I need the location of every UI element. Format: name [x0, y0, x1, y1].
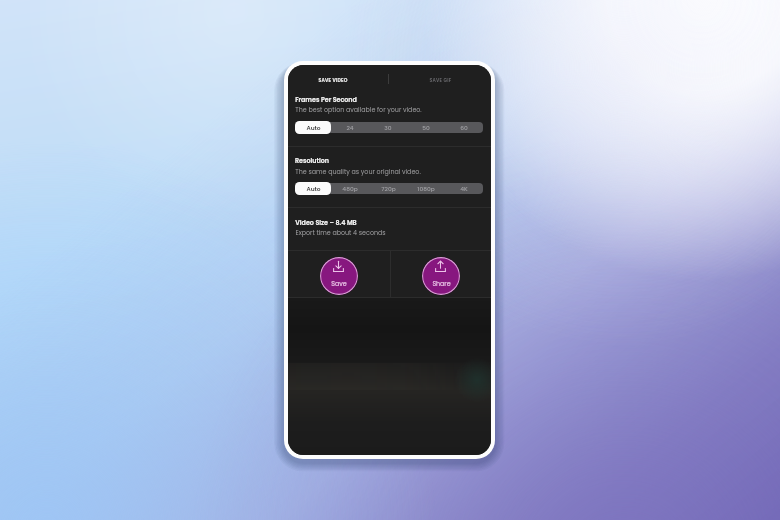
staticText: The same quality as your original video.	[295, 167, 421, 176]
staticText: 4K	[460, 185, 468, 193]
button[interactable]: SAVE VIDEO	[301, 71, 365, 89]
button[interactable]: Auto	[295, 182, 331, 195]
button[interactable]: 50	[407, 121, 445, 134]
staticText: Auto	[306, 185, 321, 193]
button[interactable]: 24	[331, 121, 369, 134]
button[interactable]: 1080p	[407, 182, 445, 195]
staticText: 720p	[381, 185, 396, 193]
button[interactable]: Share	[422, 257, 460, 295]
staticText: Resolution	[295, 156, 329, 165]
button[interactable]: 60	[445, 121, 483, 134]
staticText: SAVE VIDEO	[318, 77, 348, 84]
staticText: 1080p	[417, 185, 435, 193]
staticText: 60	[460, 124, 468, 132]
button[interactable]: SAVE GIF	[408, 71, 472, 89]
staticText: Save	[331, 279, 347, 288]
staticText: The best option available for your video…	[295, 105, 422, 114]
button[interactable]: Save	[320, 257, 358, 295]
staticText: 480p	[342, 185, 358, 193]
button[interactable]: 720p	[369, 182, 407, 195]
button[interactable]: 30	[369, 121, 407, 134]
staticText: 30	[384, 124, 392, 132]
button[interactable]: 480p	[331, 182, 369, 195]
staticText: Export time about 4 seconds	[295, 228, 386, 237]
staticText: 50	[422, 124, 430, 132]
staticText: Auto	[306, 124, 321, 132]
staticText: Frames Per Second	[295, 95, 357, 104]
staticText: Video Size – 8.4 MB	[295, 218, 357, 227]
staticText: SAVE GIF	[429, 77, 452, 84]
staticText: 24	[346, 124, 354, 132]
button[interactable]: 4K	[445, 182, 483, 195]
staticText: Share	[432, 279, 451, 288]
button[interactable]: Auto	[295, 121, 331, 134]
